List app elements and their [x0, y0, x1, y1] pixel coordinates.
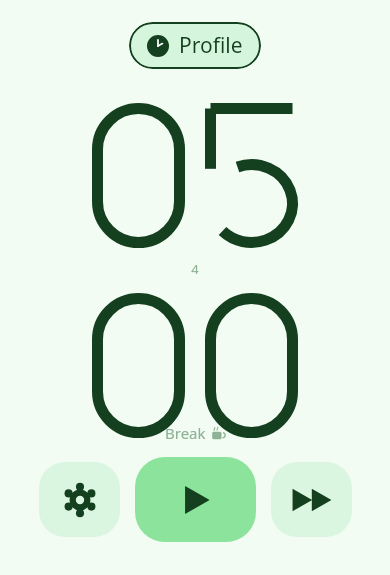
- staticText: Break: [165, 423, 206, 443]
- button[interactable]: Start timer: [135, 457, 256, 542]
- button[interactable]: Skip: [271, 462, 352, 537]
- button[interactable]: Profile: [129, 22, 261, 69]
- button[interactable]: Settings: [39, 462, 120, 537]
- staticText: 4: [191, 260, 199, 278]
- staticText: Profile: [179, 31, 243, 60]
